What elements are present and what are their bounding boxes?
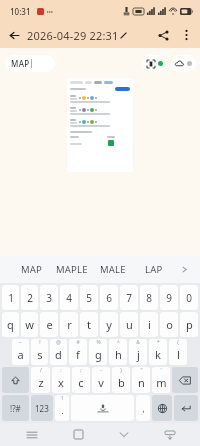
staticText: e bbox=[46, 317, 53, 332]
staticText: f bbox=[76, 347, 80, 362]
button[interactable]: MAP bbox=[12, 256, 52, 283]
staticText: n bbox=[138, 375, 145, 390]
staticText: 1 bbox=[8, 291, 14, 305]
button[interactable]: Shift bbox=[2, 367, 29, 393]
button[interactable]: 1 bbox=[2, 285, 19, 310]
button[interactable]: : bbox=[52, 367, 70, 393]
button[interactable]: Change language bbox=[152, 395, 172, 421]
staticText: c bbox=[78, 375, 84, 390]
button[interactable]: 6 bbox=[100, 285, 118, 310]
staticText: / bbox=[40, 367, 42, 374]
button[interactable]: More suggestions bbox=[174, 256, 194, 283]
staticText: 2026-04-29 22:31 bbox=[27, 28, 119, 43]
button[interactable]: Home bbox=[66, 423, 90, 446]
button[interactable]: Back bbox=[112, 423, 136, 446]
staticText: * bbox=[157, 339, 160, 346]
staticText: m bbox=[156, 375, 167, 390]
button[interactable]: Cloud bbox=[171, 55, 196, 72]
staticText: . bbox=[61, 405, 64, 416]
button[interactable]: , bbox=[136, 395, 150, 421]
staticText: !?# bbox=[10, 403, 21, 414]
staticText: z bbox=[38, 375, 44, 390]
button[interactable]: # bbox=[69, 339, 87, 365]
staticText: 3 bbox=[46, 291, 52, 305]
staticText: 1 bbox=[61, 395, 64, 402]
button[interactable]: p bbox=[180, 312, 198, 337]
button[interactable]: 9 bbox=[160, 285, 178, 310]
button[interactable]: 3 bbox=[40, 285, 58, 310]
button[interactable]: Scan bbox=[143, 55, 167, 72]
button[interactable]: * bbox=[149, 339, 167, 365]
button[interactable]: t bbox=[80, 312, 98, 337]
button[interactable]: LAP bbox=[133, 256, 174, 283]
button[interactable]: MAPLE bbox=[52, 256, 92, 283]
staticText: s bbox=[37, 347, 43, 362]
button[interactable]: Hide keyboard bbox=[158, 423, 182, 446]
staticText: 2 bbox=[27, 291, 33, 305]
staticText: 0 bbox=[186, 291, 192, 305]
button[interactable]: e bbox=[40, 312, 58, 337]
staticText: i bbox=[148, 317, 151, 332]
button[interactable]: MAP bbox=[5, 55, 55, 72]
button[interactable]: @ bbox=[50, 339, 67, 365]
button[interactable]: MALE bbox=[92, 256, 133, 283]
button[interactable]: Share bbox=[151, 23, 175, 47]
button[interactable]: 8 bbox=[140, 285, 158, 310]
staticText: LAP bbox=[145, 263, 163, 276]
staticText: 123 bbox=[35, 403, 49, 414]
button[interactable]: i bbox=[140, 312, 158, 337]
staticText: y bbox=[106, 317, 112, 332]
button[interactable]: - bbox=[92, 367, 110, 393]
button[interactable]: Back bbox=[3, 24, 25, 46]
button[interactable]: 1 bbox=[55, 395, 69, 421]
staticText: 10:31 bbox=[10, 6, 31, 17]
staticText: MALE bbox=[100, 263, 126, 276]
staticText: w bbox=[25, 317, 34, 332]
button[interactable]: Symbols bbox=[2, 395, 29, 421]
button[interactable]: Enter bbox=[174, 395, 198, 421]
button[interactable]: ! bbox=[31, 339, 48, 365]
staticText: q bbox=[7, 317, 14, 332]
button[interactable]: 0 bbox=[180, 285, 198, 310]
button[interactable]: u bbox=[120, 312, 138, 337]
button[interactable]: ) bbox=[112, 367, 130, 393]
staticText: 8 bbox=[146, 291, 152, 305]
button[interactable]: " bbox=[132, 367, 150, 393]
staticText: o bbox=[166, 317, 173, 332]
button[interactable]: 4 bbox=[60, 285, 78, 310]
button[interactable]: 5 bbox=[80, 285, 98, 310]
button[interactable]: Attached screenshot bbox=[67, 78, 133, 172]
button[interactable]: ; bbox=[72, 367, 90, 393]
button[interactable]: w bbox=[21, 312, 38, 337]
button[interactable]: ' bbox=[152, 367, 170, 393]
button[interactable]: & bbox=[129, 339, 147, 365]
button[interactable]: ( bbox=[169, 339, 187, 365]
staticText: h bbox=[115, 347, 122, 362]
button[interactable]: 2 bbox=[21, 285, 38, 310]
staticText: d bbox=[55, 347, 62, 362]
button[interactable]: o bbox=[160, 312, 178, 337]
button[interactable]: Backspace bbox=[172, 367, 198, 393]
staticText: 9 bbox=[166, 291, 172, 305]
staticText: ~ bbox=[19, 339, 22, 346]
button[interactable]: q bbox=[2, 312, 19, 337]
staticText: % bbox=[96, 339, 101, 346]
staticText: MAP bbox=[21, 263, 43, 276]
button[interactable]: % bbox=[89, 339, 107, 365]
button[interactable]: Space bbox=[71, 395, 134, 421]
button[interactable]: / bbox=[31, 367, 50, 393]
button[interactable]: Numbers bbox=[31, 395, 53, 421]
staticText: k bbox=[155, 347, 161, 362]
staticText: 4 bbox=[66, 291, 72, 305]
button[interactable]: r bbox=[60, 312, 78, 337]
staticText: ^ bbox=[117, 339, 120, 346]
button[interactable]: More options bbox=[175, 24, 197, 46]
button[interactable]: ^ bbox=[109, 339, 127, 365]
staticText: g bbox=[95, 347, 102, 362]
button[interactable]: ~ bbox=[12, 339, 29, 365]
staticText: # bbox=[76, 339, 80, 346]
button[interactable]: Recents bbox=[20, 423, 44, 446]
button[interactable]: 7 bbox=[120, 285, 138, 310]
button[interactable]: y bbox=[100, 312, 118, 337]
staticText: l bbox=[177, 347, 180, 362]
